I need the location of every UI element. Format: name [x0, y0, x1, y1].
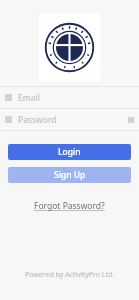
button[interactable]: Forgot Password?	[28, 197, 111, 215]
staticText: Forgot Password?	[34, 200, 105, 212]
button[interactable]: Login	[8, 144, 131, 160]
staticText: Powered by ActivityPro Ltd.	[25, 270, 115, 280]
button[interactable]: Sign Up	[8, 167, 131, 183]
button[interactable]: Email	[0, 87, 139, 108]
staticText: Login	[58, 146, 81, 158]
staticText: Sign Up	[54, 169, 86, 181]
staticText: Password	[18, 114, 57, 126]
staticText: Email	[18, 92, 40, 104]
button[interactable]: Password	[0, 109, 139, 130]
